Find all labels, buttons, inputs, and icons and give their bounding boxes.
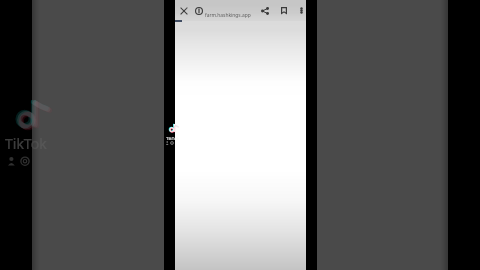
staticText: TikTok <box>32 134 45 153</box>
button[interactable]: Close <box>176 3 191 18</box>
button[interactable]: Site information <box>191 3 206 18</box>
staticText: TikTok <box>5 134 32 153</box>
staticText: TikTok <box>166 135 175 141</box>
button[interactable]: Share <box>257 3 272 18</box>
button[interactable]: More options <box>294 3 309 18</box>
staticText: farm.hashkings.app <box>205 12 251 19</box>
button[interactable]: Bookmark <box>276 3 291 18</box>
